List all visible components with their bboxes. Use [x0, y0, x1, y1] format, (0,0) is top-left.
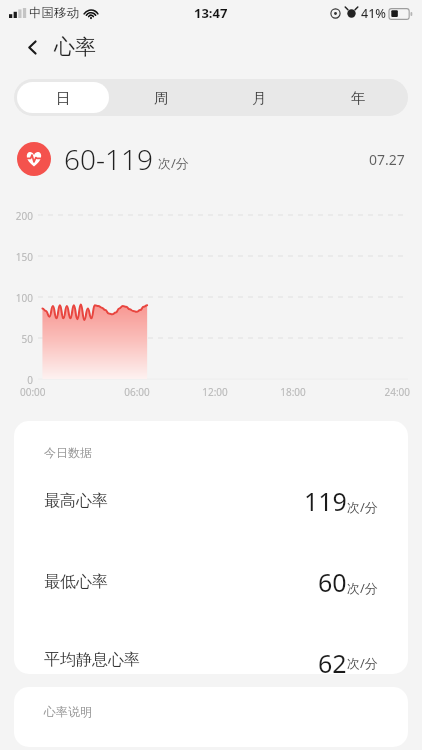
staticText: 次/分 — [158, 154, 189, 172]
staticText: 07.27 — [369, 150, 405, 169]
staticText: 60-119 — [64, 140, 153, 178]
staticText: 月 — [252, 89, 267, 107]
button[interactable]: 周 — [112, 79, 210, 116]
staticText: 41% — [361, 5, 386, 22]
staticText: 150 — [0, 250, 33, 264]
staticText: 12:00 — [176, 385, 254, 399]
staticText: 100 — [0, 291, 33, 305]
button[interactable]: 年 — [309, 79, 408, 116]
staticText: 次/分 — [347, 498, 378, 516]
staticText: 周 — [154, 89, 169, 107]
staticText: 心率 — [54, 34, 96, 60]
staticText: 心率说明 — [44, 704, 92, 719]
staticText: 最高心率 — [44, 491, 108, 511]
staticText: 06:00 — [98, 385, 176, 399]
staticText: 13:47 — [194, 4, 228, 22]
staticText: 24:00 — [332, 385, 410, 399]
button[interactable]: 最高心率 — [44, 484, 378, 518]
staticText: 119 — [304, 484, 347, 518]
button[interactable]: 最低心率 — [44, 565, 378, 599]
staticText: 今日数据 — [44, 445, 92, 460]
staticText: 年 — [351, 89, 366, 107]
staticText: 中国移动 — [29, 5, 79, 21]
staticText: 60 — [318, 565, 347, 599]
button[interactable]: 平均静息心率 — [44, 646, 378, 674]
staticText: 平均静息心率 — [44, 650, 140, 670]
button[interactable]: 日 — [17, 82, 109, 113]
staticText: 50 — [0, 332, 33, 346]
staticText: 62 — [318, 646, 347, 674]
staticText: 0 — [0, 373, 33, 387]
staticText: 日 — [56, 89, 71, 107]
staticText: 次/分 — [347, 654, 378, 672]
staticText: 最低心率 — [44, 572, 108, 592]
button[interactable]: 月 — [210, 79, 309, 116]
staticText: 00:00 — [20, 385, 98, 399]
staticText: 次/分 — [347, 579, 378, 597]
button[interactable]: Back — [16, 31, 48, 63]
staticText: 200 — [0, 209, 33, 223]
staticText: 18:00 — [254, 385, 332, 399]
